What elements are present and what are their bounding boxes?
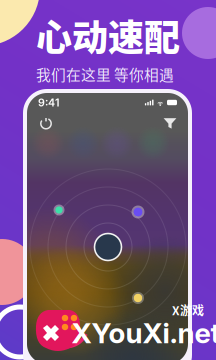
staticText: XYouXi.net [71, 316, 216, 350]
staticText: 心动速配 [36, 9, 180, 61]
staticText: 我们在这里 等你相遇 [36, 63, 174, 85]
button[interactable]: Filter [163, 116, 177, 130]
button[interactable]: Refresh [38, 115, 54, 131]
staticText: X游戏 [172, 301, 204, 319]
staticText: 9:41 [38, 96, 60, 109]
